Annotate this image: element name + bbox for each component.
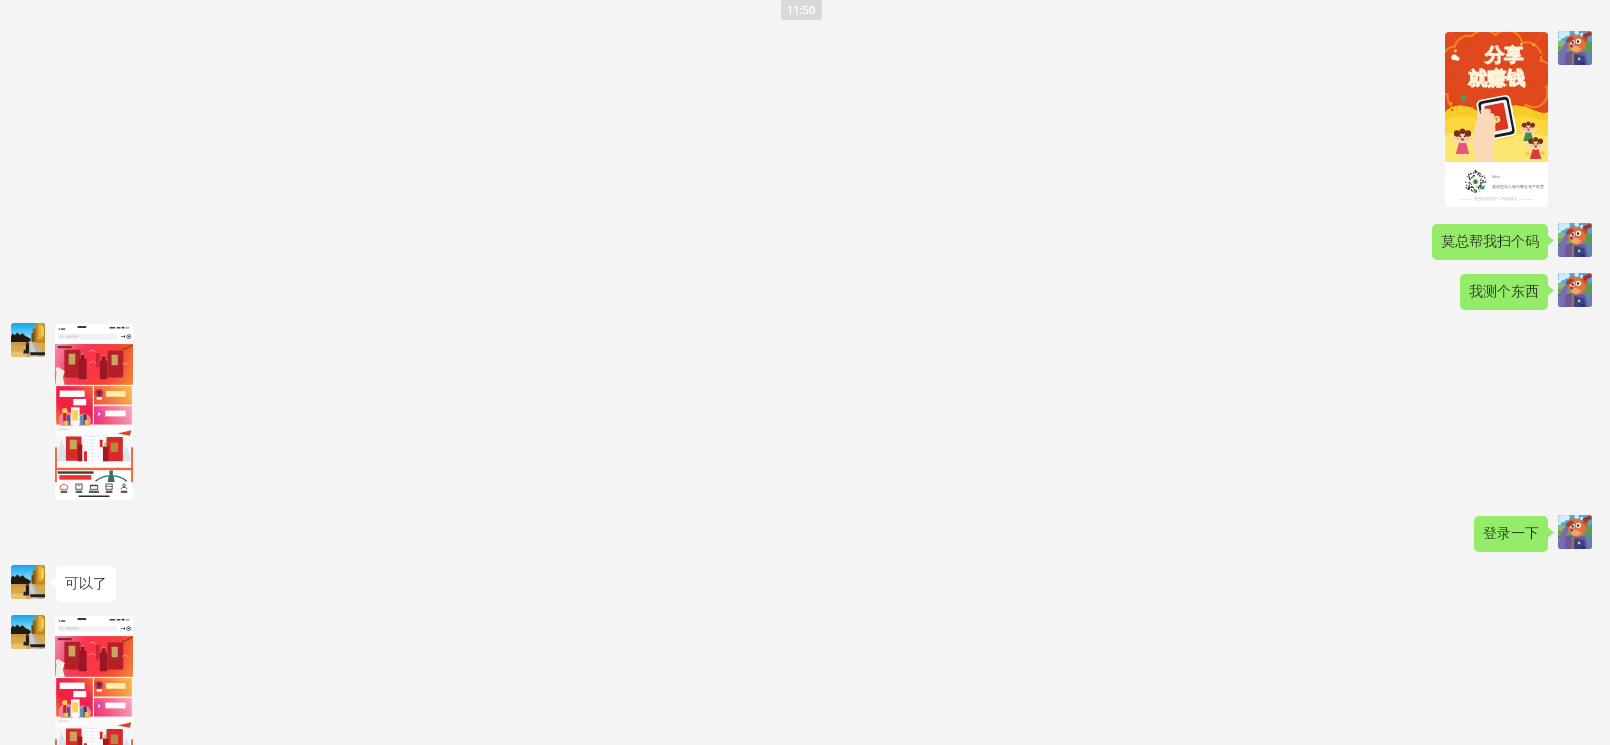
button[interactable]: 登录一下 bbox=[1474, 516, 1554, 552]
staticText: 11:50 bbox=[787, 2, 816, 17]
staticText: 分享 bbox=[1485, 44, 1523, 68]
staticText: 就赚钱 bbox=[1468, 67, 1525, 91]
button[interactable]: Shared screenshot bbox=[55, 616, 133, 745]
staticText: Nick bbox=[1492, 174, 1501, 179]
staticText: 莫总帮我扫个码 bbox=[1441, 233, 1539, 251]
button[interactable]: Avatar bbox=[11, 615, 45, 649]
button[interactable]: Avatar bbox=[11, 323, 45, 357]
button[interactable]: Avatar bbox=[1558, 223, 1592, 257]
staticText: 登录一下 bbox=[1483, 525, 1539, 543]
button[interactable]: Avatar bbox=[1558, 31, 1592, 65]
button[interactable]: Avatar bbox=[11, 565, 45, 599]
button[interactable]: 莫总帮我扫个码 bbox=[1432, 224, 1554, 260]
button[interactable]: 可以了 bbox=[50, 566, 116, 602]
staticText: ——— 长按识别图中二维码进入 ——— bbox=[1459, 196, 1534, 201]
staticText: 我测个东西 bbox=[1469, 283, 1539, 301]
staticText: 邀请您加入微信圈分享产推荐 bbox=[1492, 184, 1544, 189]
button[interactable]: Share poster bbox=[1445, 32, 1548, 207]
button[interactable]: 我测个东西 bbox=[1460, 274, 1554, 310]
button[interactable]: Avatar bbox=[1558, 515, 1592, 549]
button[interactable]: Avatar bbox=[1558, 273, 1592, 307]
staticText: 可以了 bbox=[65, 575, 107, 593]
button[interactable]: Shared screenshot bbox=[55, 324, 133, 500]
